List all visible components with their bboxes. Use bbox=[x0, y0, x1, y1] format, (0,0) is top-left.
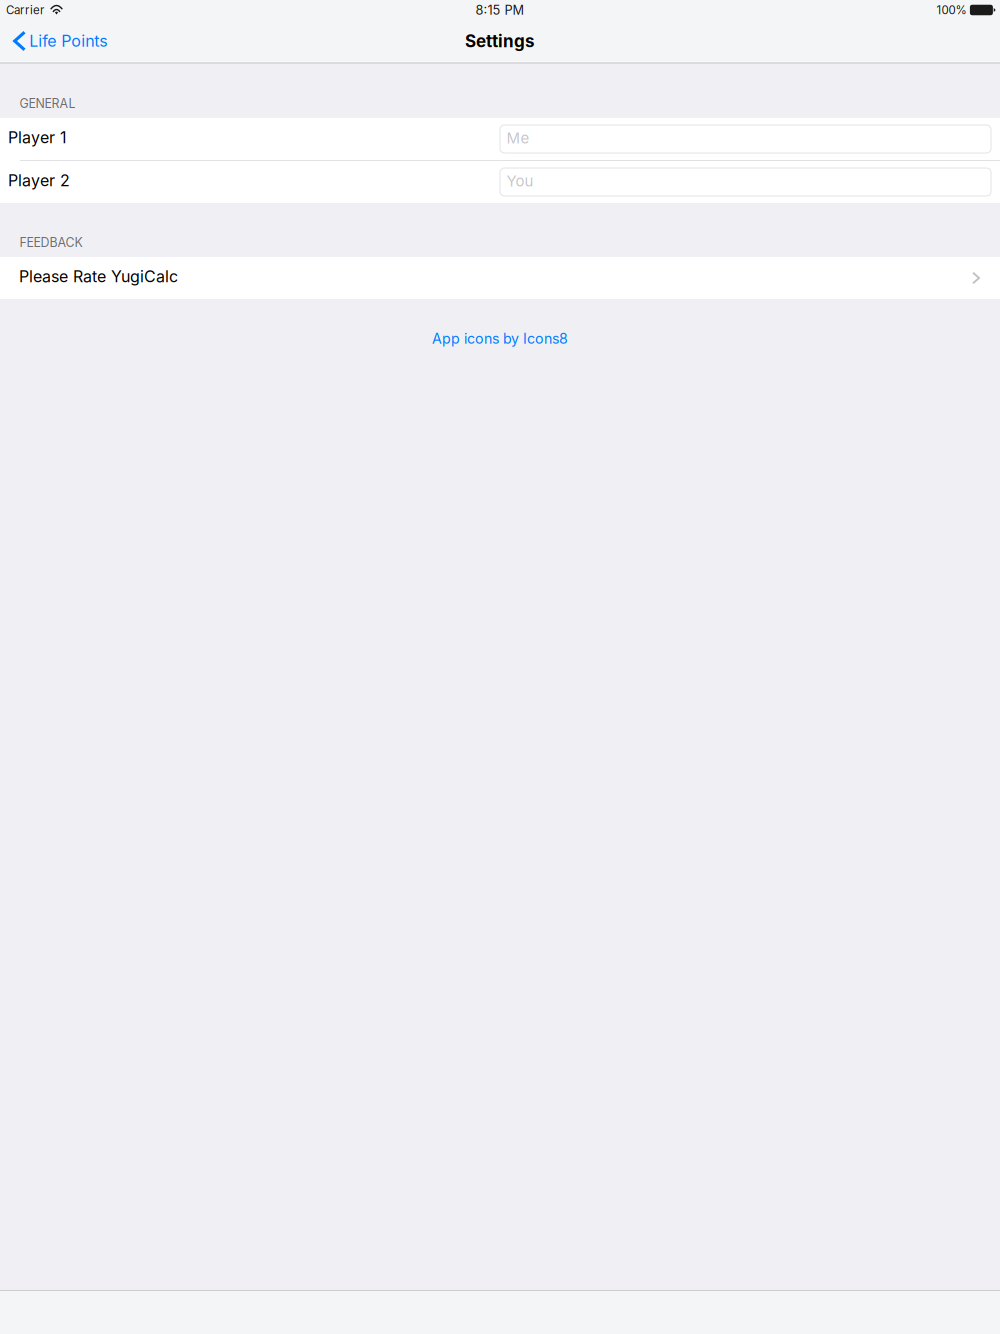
staticText: Me bbox=[506, 129, 529, 147]
staticText: Player 1 bbox=[8, 128, 67, 147]
staticText: Life Points bbox=[29, 31, 107, 51]
staticText: Carrier bbox=[6, 3, 44, 17]
button[interactable]: You bbox=[500, 168, 991, 196]
staticText: 8:15 PM bbox=[475, 2, 524, 18]
staticText: GENERAL bbox=[19, 96, 75, 111]
staticText: FEEDBACK bbox=[19, 235, 82, 250]
staticText: App icons by Icons8 bbox=[432, 330, 568, 347]
staticText: 100% bbox=[936, 3, 966, 17]
staticText: You bbox=[506, 172, 533, 190]
staticText: Please Rate YugiCalc bbox=[19, 267, 178, 286]
staticText: Player 2 bbox=[8, 171, 70, 190]
button[interactable]: Please Rate YugiCalc bbox=[0, 257, 1000, 299]
staticText: Settings bbox=[465, 31, 535, 51]
button[interactable]: Me bbox=[500, 125, 991, 153]
button[interactable]: Life Points bbox=[0, 20, 117, 62]
button[interactable]: App icons by Icons8 bbox=[432, 330, 568, 347]
